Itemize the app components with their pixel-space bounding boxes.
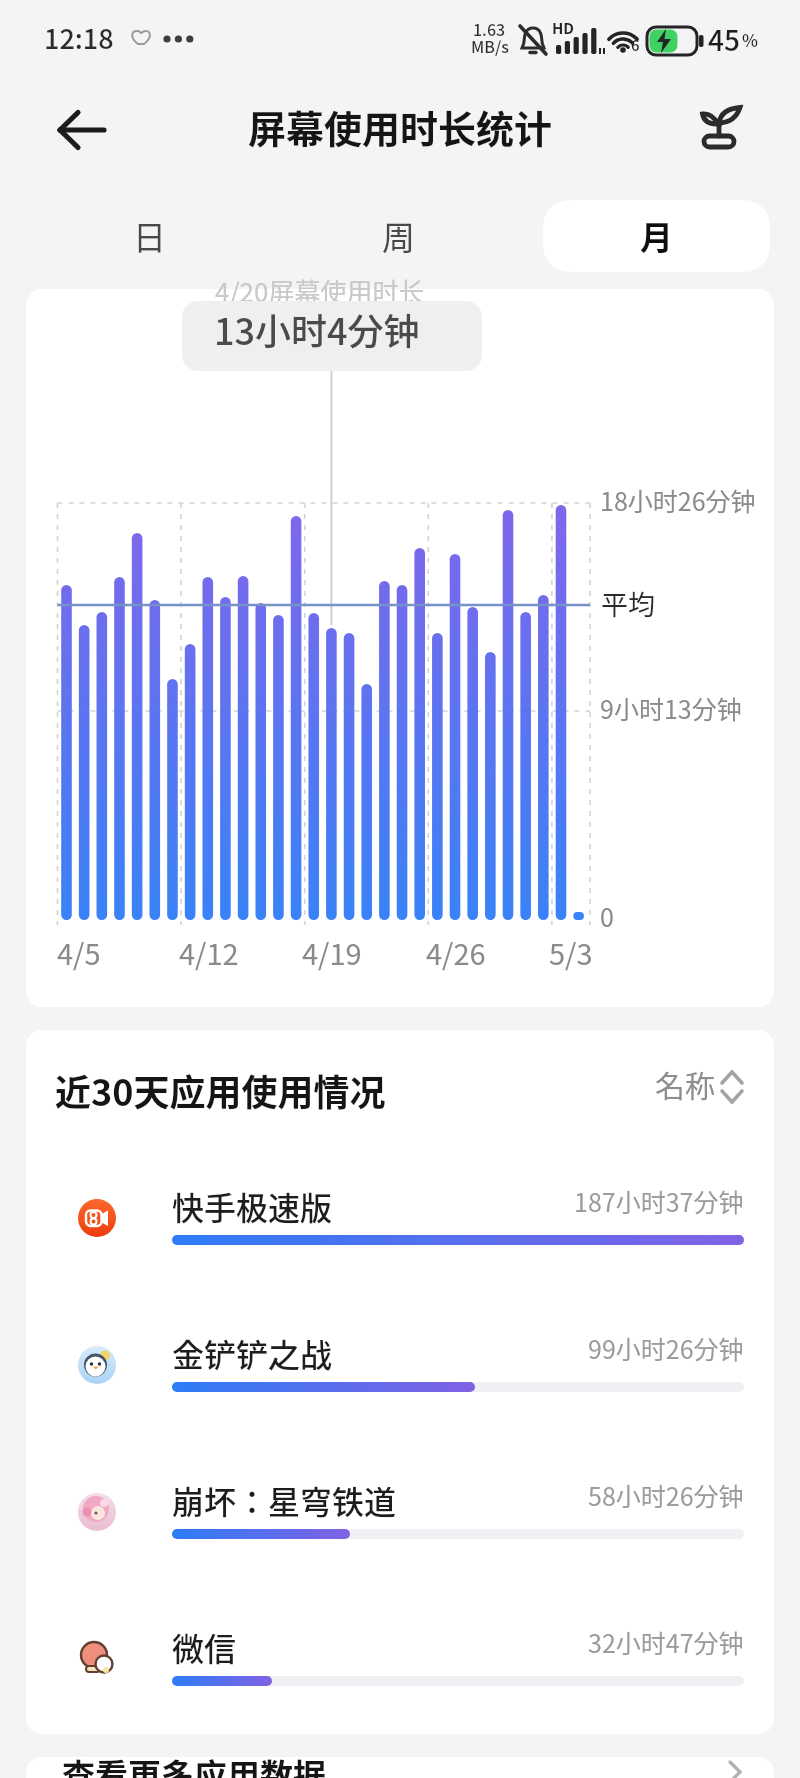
staticText: 6 — [631, 34, 640, 56]
button[interactable]: 月 — [543, 200, 770, 272]
button[interactable] — [40, 1310, 760, 1440]
staticText: 1.63 — [473, 17, 506, 40]
staticText: 微信 — [172, 1624, 237, 1670]
staticText: 187小时37分钟 — [574, 1183, 744, 1219]
button[interactable]: 日 — [24, 200, 274, 272]
staticText: 4/5 — [57, 931, 101, 973]
staticText: 屏幕使用时长统计 — [248, 99, 553, 154]
staticText: 12:18 — [44, 18, 114, 57]
staticText: 近30天应用使用情况 — [55, 1064, 386, 1116]
button[interactable] — [40, 1604, 760, 1734]
staticText: 名称 — [655, 1062, 715, 1105]
staticText: 18小时26分钟 — [600, 482, 756, 518]
staticText: HD — [552, 17, 575, 39]
staticText: MB/s — [471, 34, 509, 57]
staticText: 月 — [640, 212, 673, 260]
staticText: 日 — [133, 212, 166, 260]
staticText: 4/12 — [179, 931, 239, 973]
staticText: % — [742, 27, 758, 52]
staticText: 99小时26分钟 — [588, 1330, 744, 1366]
staticText: 32小时47分钟 — [588, 1624, 744, 1660]
staticText: 13小时4分钟 — [214, 303, 420, 355]
button[interactable] — [692, 96, 756, 160]
staticText: 金铲铲之战 — [172, 1330, 333, 1376]
staticText: 4/19 — [302, 931, 362, 973]
staticText: 4/20屏幕使用时长 — [215, 272, 425, 310]
button[interactable] — [26, 1757, 774, 1778]
staticText: 查看更多应用数据 — [62, 1750, 326, 1778]
staticText: 快手极速版 — [172, 1183, 333, 1229]
staticText: 9小时13分钟 — [600, 690, 742, 726]
staticText: 4/26 — [426, 931, 486, 973]
button[interactable] — [40, 1457, 760, 1587]
staticText: 平均 — [601, 584, 655, 623]
button[interactable] — [640, 1055, 760, 1115]
button[interactable]: 周 — [274, 200, 523, 272]
staticText: 58小时26分钟 — [588, 1477, 744, 1513]
staticText: 5/3 — [549, 931, 593, 973]
staticText: 周 — [382, 212, 415, 260]
staticText: 0 — [600, 898, 614, 934]
staticText: 45 — [708, 19, 740, 60]
staticText: 崩坏：星穹铁道 — [172, 1477, 397, 1523]
button[interactable] — [48, 98, 112, 162]
button[interactable] — [40, 1163, 760, 1293]
